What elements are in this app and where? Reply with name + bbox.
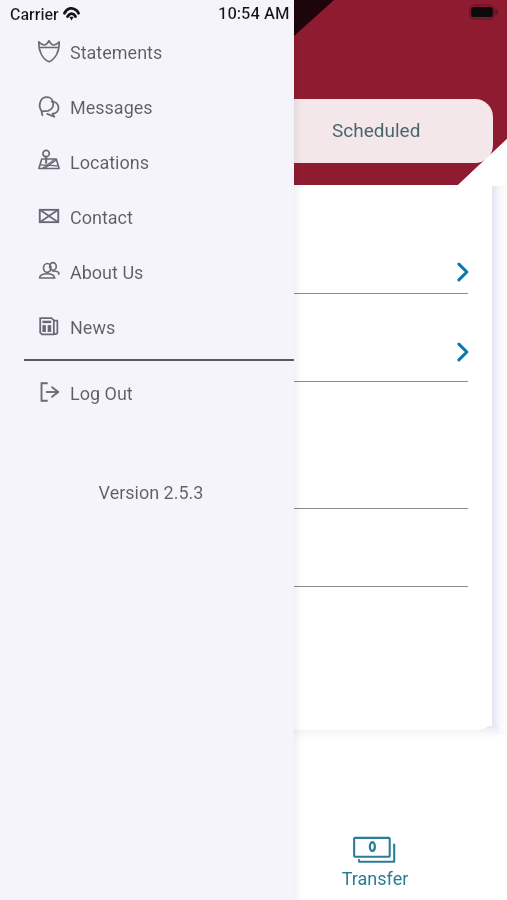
button[interactable]: Contact xyxy=(0,190,294,245)
button[interactable] xyxy=(16,185,492,293)
staticText: News xyxy=(70,317,116,338)
staticText: 10:54 AM xyxy=(218,4,290,23)
staticText: Contact xyxy=(70,207,133,228)
button[interactable]: Log Out xyxy=(0,366,294,421)
button[interactable]: News xyxy=(0,300,294,355)
button[interactable]: Locations xyxy=(0,135,294,190)
staticText: Messages xyxy=(70,97,153,118)
button[interactable]: Statements xyxy=(0,25,294,80)
other: Open xyxy=(456,261,472,283)
staticText: Scheduled xyxy=(332,119,421,141)
button[interactable] xyxy=(16,293,492,381)
button[interactable]: Messages xyxy=(0,80,294,135)
button[interactable] xyxy=(16,381,492,508)
staticText: Transfer xyxy=(325,868,425,889)
button[interactable]: Transfer xyxy=(326,826,426,900)
button[interactable] xyxy=(16,586,492,729)
button[interactable]: Scheduled xyxy=(116,99,493,163)
other: Open xyxy=(456,341,472,363)
staticText: Carrier xyxy=(10,5,59,24)
staticText: About Us xyxy=(70,262,144,283)
button[interactable]: About Us xyxy=(0,245,294,300)
staticText: Version 2.5.3 xyxy=(4,482,298,503)
staticText: Log Out xyxy=(70,383,133,404)
staticText: Locations xyxy=(70,152,149,173)
button[interactable] xyxy=(16,508,492,586)
staticText: Statements xyxy=(70,42,163,63)
